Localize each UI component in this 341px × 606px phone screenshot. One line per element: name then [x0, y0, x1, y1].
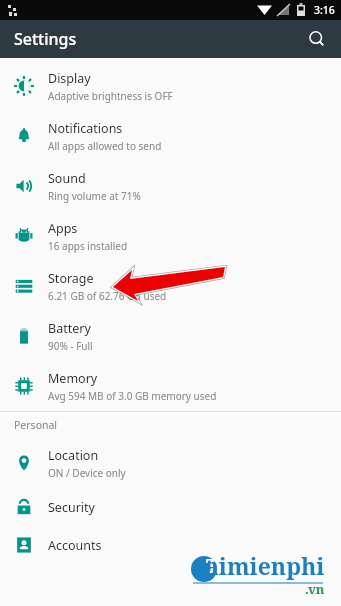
button[interactable]: Location: [0, 438, 341, 488]
button[interactable]: Display: [0, 61, 341, 111]
staticText: Battery: [48, 320, 91, 337]
staticText: .vn: [305, 580, 325, 598]
button[interactable]: Security: [0, 488, 341, 526]
staticText: Security: [48, 499, 95, 516]
staticText: 3:16: [314, 3, 335, 17]
button[interactable]: Search: [301, 23, 333, 55]
staticText: Sound: [48, 170, 86, 187]
staticText: Adaptive brightness is OFF: [48, 89, 173, 103]
button[interactable]: Apps: [0, 211, 341, 261]
staticText: Accounts: [48, 537, 102, 554]
staticText: 6.21 GB of 62.76 GB used: [48, 289, 167, 303]
staticText: Personal: [14, 418, 58, 432]
staticText: Settings: [14, 28, 77, 50]
staticText: Notifications: [48, 120, 123, 137]
staticText: 90% - Full: [48, 339, 93, 353]
button[interactable]: Battery: [0, 311, 341, 361]
staticText: aimienphi: [205, 550, 325, 581]
button[interactable]: Memory: [0, 361, 341, 411]
staticText: Avg 594 MB of 3.0 GB memory used: [48, 389, 217, 403]
staticText: Display: [48, 70, 91, 87]
staticText: Location: [48, 447, 99, 464]
staticText: Memory: [48, 370, 98, 387]
staticText: Ring volume at 71%: [48, 189, 141, 203]
staticText: T: [206, 553, 219, 579]
button[interactable]: Notifications: [0, 111, 341, 161]
staticText: Storage: [48, 270, 94, 287]
staticText: Apps: [48, 220, 78, 237]
staticText: All apps allowed to send: [48, 139, 162, 153]
button[interactable]: Storage: [0, 261, 341, 311]
staticText: 16 apps installed: [48, 239, 128, 253]
staticText: ON / Device only: [48, 466, 126, 480]
button[interactable]: Sound: [0, 161, 341, 211]
button[interactable]: Accounts: [0, 526, 341, 564]
